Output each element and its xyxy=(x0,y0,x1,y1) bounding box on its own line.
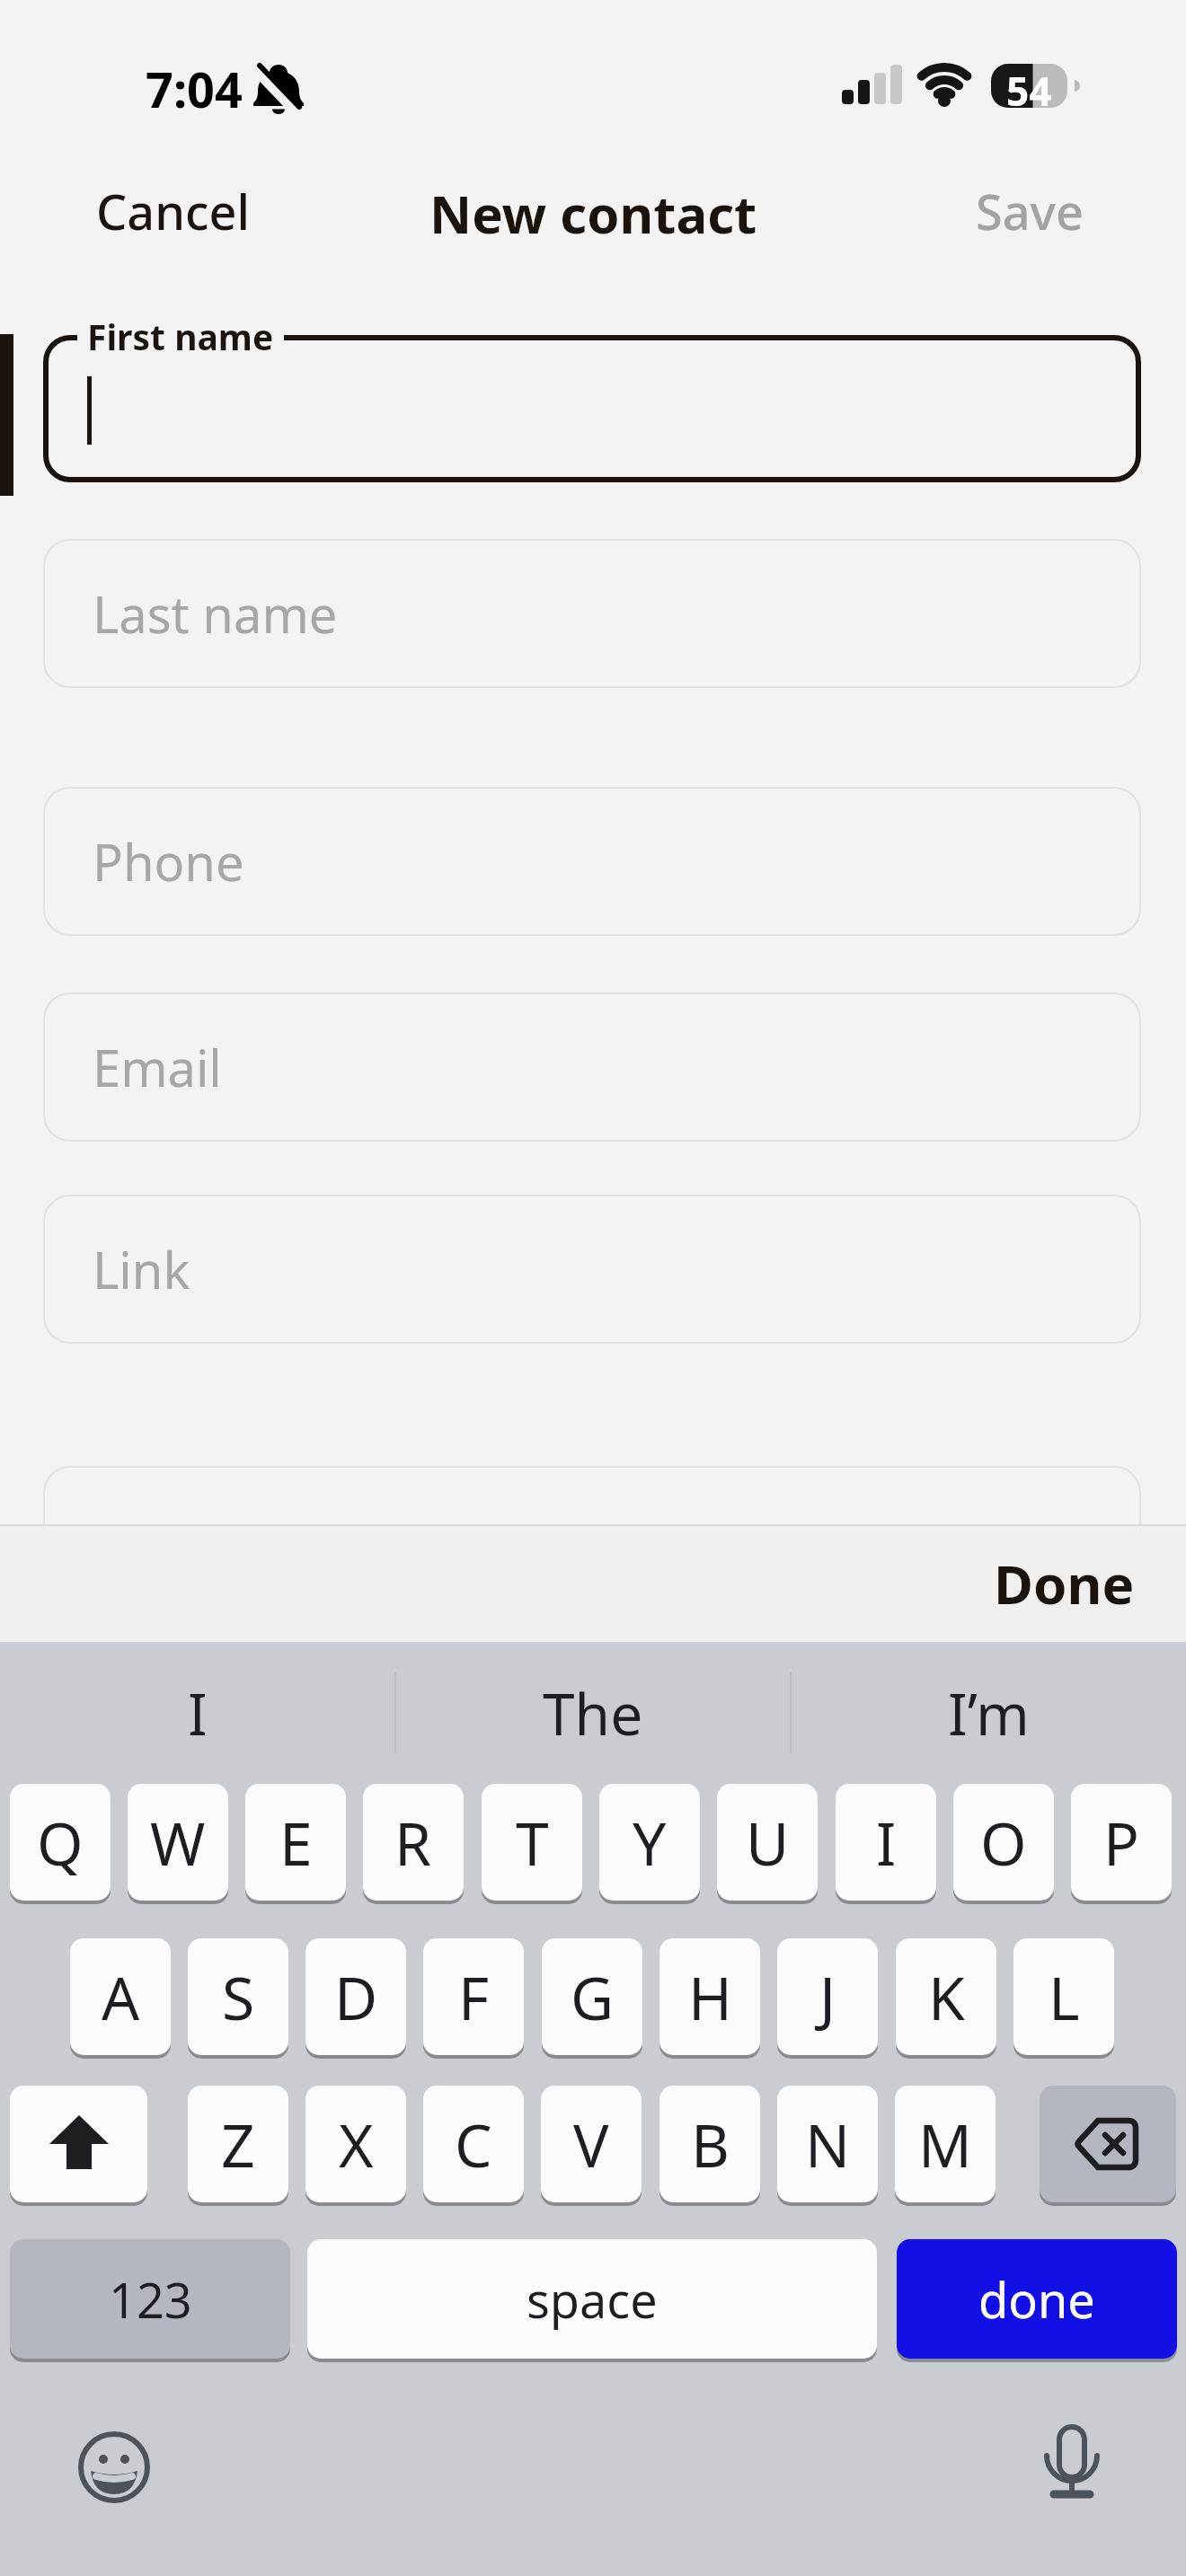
staticText: I xyxy=(876,1802,897,1883)
button[interactable]: I xyxy=(0,1648,395,1778)
staticText: Last name xyxy=(93,579,338,648)
staticText: Q xyxy=(37,1802,84,1883)
button[interactable] xyxy=(1035,2423,1109,2506)
staticText: M xyxy=(918,2104,972,2184)
staticText: W xyxy=(150,1802,206,1883)
staticText: L xyxy=(1049,1956,1080,2037)
staticText: C xyxy=(455,2104,492,2184)
button[interactable]: 123 xyxy=(10,2239,290,2362)
button[interactable] xyxy=(1040,2086,1176,2206)
button[interactable]: Phone xyxy=(43,787,1141,936)
button[interactable]: Cancel xyxy=(96,178,251,241)
button[interactable]: K xyxy=(896,1938,996,2059)
staticText: B xyxy=(691,2104,730,2184)
staticText: Link xyxy=(93,1235,190,1303)
staticText: U xyxy=(746,1802,790,1883)
staticText: K xyxy=(928,1956,965,2037)
staticText: The xyxy=(543,1674,643,1752)
staticText: A xyxy=(102,1956,140,2037)
button[interactable]: space xyxy=(307,2239,877,2362)
button[interactable]: Link xyxy=(43,1195,1141,1344)
button[interactable]: D xyxy=(305,1938,406,2059)
button[interactable]: N xyxy=(777,2086,878,2206)
button[interactable]: C xyxy=(423,2086,524,2206)
button[interactable] xyxy=(43,1466,1141,1615)
staticText: T xyxy=(516,1802,549,1883)
button[interactable]: B xyxy=(659,2086,760,2206)
staticText: I xyxy=(188,1674,208,1752)
button[interactable]: G xyxy=(542,1938,642,2059)
button[interactable]: Done xyxy=(994,1547,1135,1620)
staticText: O xyxy=(980,1802,1027,1883)
button[interactable]: S xyxy=(188,1938,288,2059)
button[interactable]: Z xyxy=(188,2086,288,2206)
staticText: I’m xyxy=(948,1674,1030,1752)
staticText: New contact xyxy=(429,178,757,241)
button[interactable]: Last name xyxy=(43,539,1141,688)
staticText: H xyxy=(688,1956,732,2037)
staticText: R xyxy=(394,1802,432,1883)
button[interactable]: A xyxy=(70,1938,171,2059)
staticText: N xyxy=(805,2104,851,2184)
button[interactable]: The xyxy=(395,1648,791,1778)
button[interactable]: I’m xyxy=(791,1648,1186,1778)
staticText: V xyxy=(573,2104,609,2184)
staticText: D xyxy=(334,1956,378,2037)
button[interactable]: Email xyxy=(43,992,1141,1142)
button[interactable]: U xyxy=(717,1784,818,1904)
button[interactable]: P xyxy=(1071,1784,1172,1904)
staticText: Email xyxy=(93,1033,222,1101)
button[interactable]: W xyxy=(128,1784,228,1904)
button[interactable]: R xyxy=(363,1784,464,1904)
button[interactable]: F xyxy=(423,1938,524,2059)
button[interactable] xyxy=(43,335,1141,482)
staticText: First name xyxy=(87,313,274,360)
button[interactable]: Y xyxy=(599,1784,700,1904)
button[interactable]: Q xyxy=(10,1784,111,1904)
staticText: S xyxy=(222,1956,255,2037)
staticText: Phone xyxy=(93,827,244,895)
button[interactable]: M xyxy=(895,2086,996,2206)
staticText: Z xyxy=(221,2104,255,2184)
staticText: 54 xyxy=(1006,64,1052,108)
staticText: P xyxy=(1103,1802,1139,1883)
button[interactable] xyxy=(77,2430,151,2504)
staticText: space xyxy=(527,2266,658,2333)
button[interactable] xyxy=(10,2086,147,2206)
staticText: Y xyxy=(633,1802,667,1883)
button[interactable]: Save xyxy=(976,178,1084,241)
staticText: F xyxy=(458,1956,490,2037)
staticText: G xyxy=(571,1956,615,2037)
staticText: X xyxy=(339,2104,374,2184)
button[interactable]: X xyxy=(305,2086,406,2206)
button[interactable]: done xyxy=(897,2239,1177,2362)
button[interactable]: H xyxy=(659,1938,760,2059)
staticText: E xyxy=(279,1802,313,1883)
button[interactable]: J xyxy=(777,1938,878,2059)
staticText: 123 xyxy=(109,2266,192,2333)
button[interactable]: V xyxy=(541,2086,642,2206)
staticText: 7:04 xyxy=(146,56,243,122)
button[interactable]: I xyxy=(836,1784,936,1904)
button[interactable]: E xyxy=(245,1784,346,1904)
button[interactable]: O xyxy=(953,1784,1054,1904)
staticText: J xyxy=(819,1956,836,2037)
button[interactable]: L xyxy=(1013,1938,1114,2059)
staticText: done xyxy=(978,2266,1095,2333)
button[interactable]: T xyxy=(482,1784,582,1904)
